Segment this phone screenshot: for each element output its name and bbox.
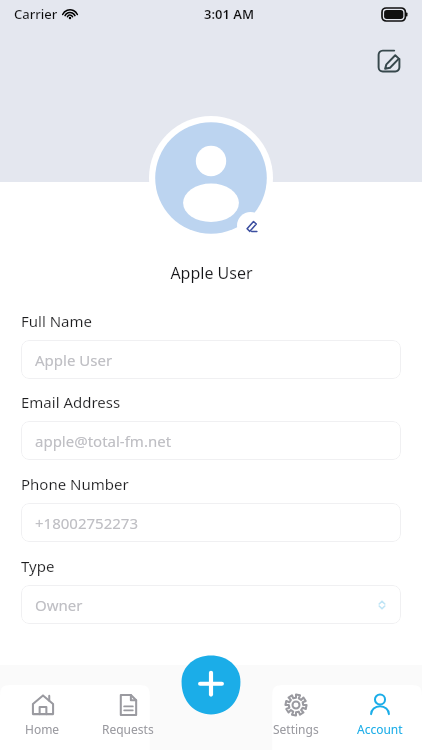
button[interactable]: Edit profile [372, 44, 406, 78]
staticText: Settings [273, 721, 319, 737]
staticText: apple@total-fm.net [35, 431, 172, 451]
button[interactable]: Account [338, 665, 422, 750]
staticText: Account [357, 721, 403, 737]
button[interactable]: Owner [21, 585, 401, 624]
staticText: Home [25, 721, 60, 737]
button[interactable]: Change photo [237, 212, 264, 239]
button[interactable]: Home [0, 665, 85, 750]
staticText: Full Name [21, 311, 92, 331]
button[interactable]: Settings [254, 665, 338, 750]
staticText: Apple User [170, 262, 253, 284]
button[interactable]: apple@total-fm.net [21, 421, 401, 460]
button[interactable]: Requests [85, 665, 170, 750]
staticText: Owner [35, 595, 83, 615]
button[interactable]: +18002752273 [21, 503, 401, 542]
staticText: Carrier [14, 5, 58, 23]
staticText: Requests [102, 721, 154, 737]
button[interactable]: Add [179, 653, 243, 717]
staticText: Phone Number [21, 474, 129, 494]
staticText: +18002752273 [35, 513, 138, 533]
staticText: 3:01 AM [204, 5, 255, 23]
staticText: Apple User [35, 350, 113, 370]
button[interactable]: Apple User [21, 340, 401, 379]
staticText: Email Address [21, 392, 121, 412]
staticText: Type [21, 556, 55, 576]
